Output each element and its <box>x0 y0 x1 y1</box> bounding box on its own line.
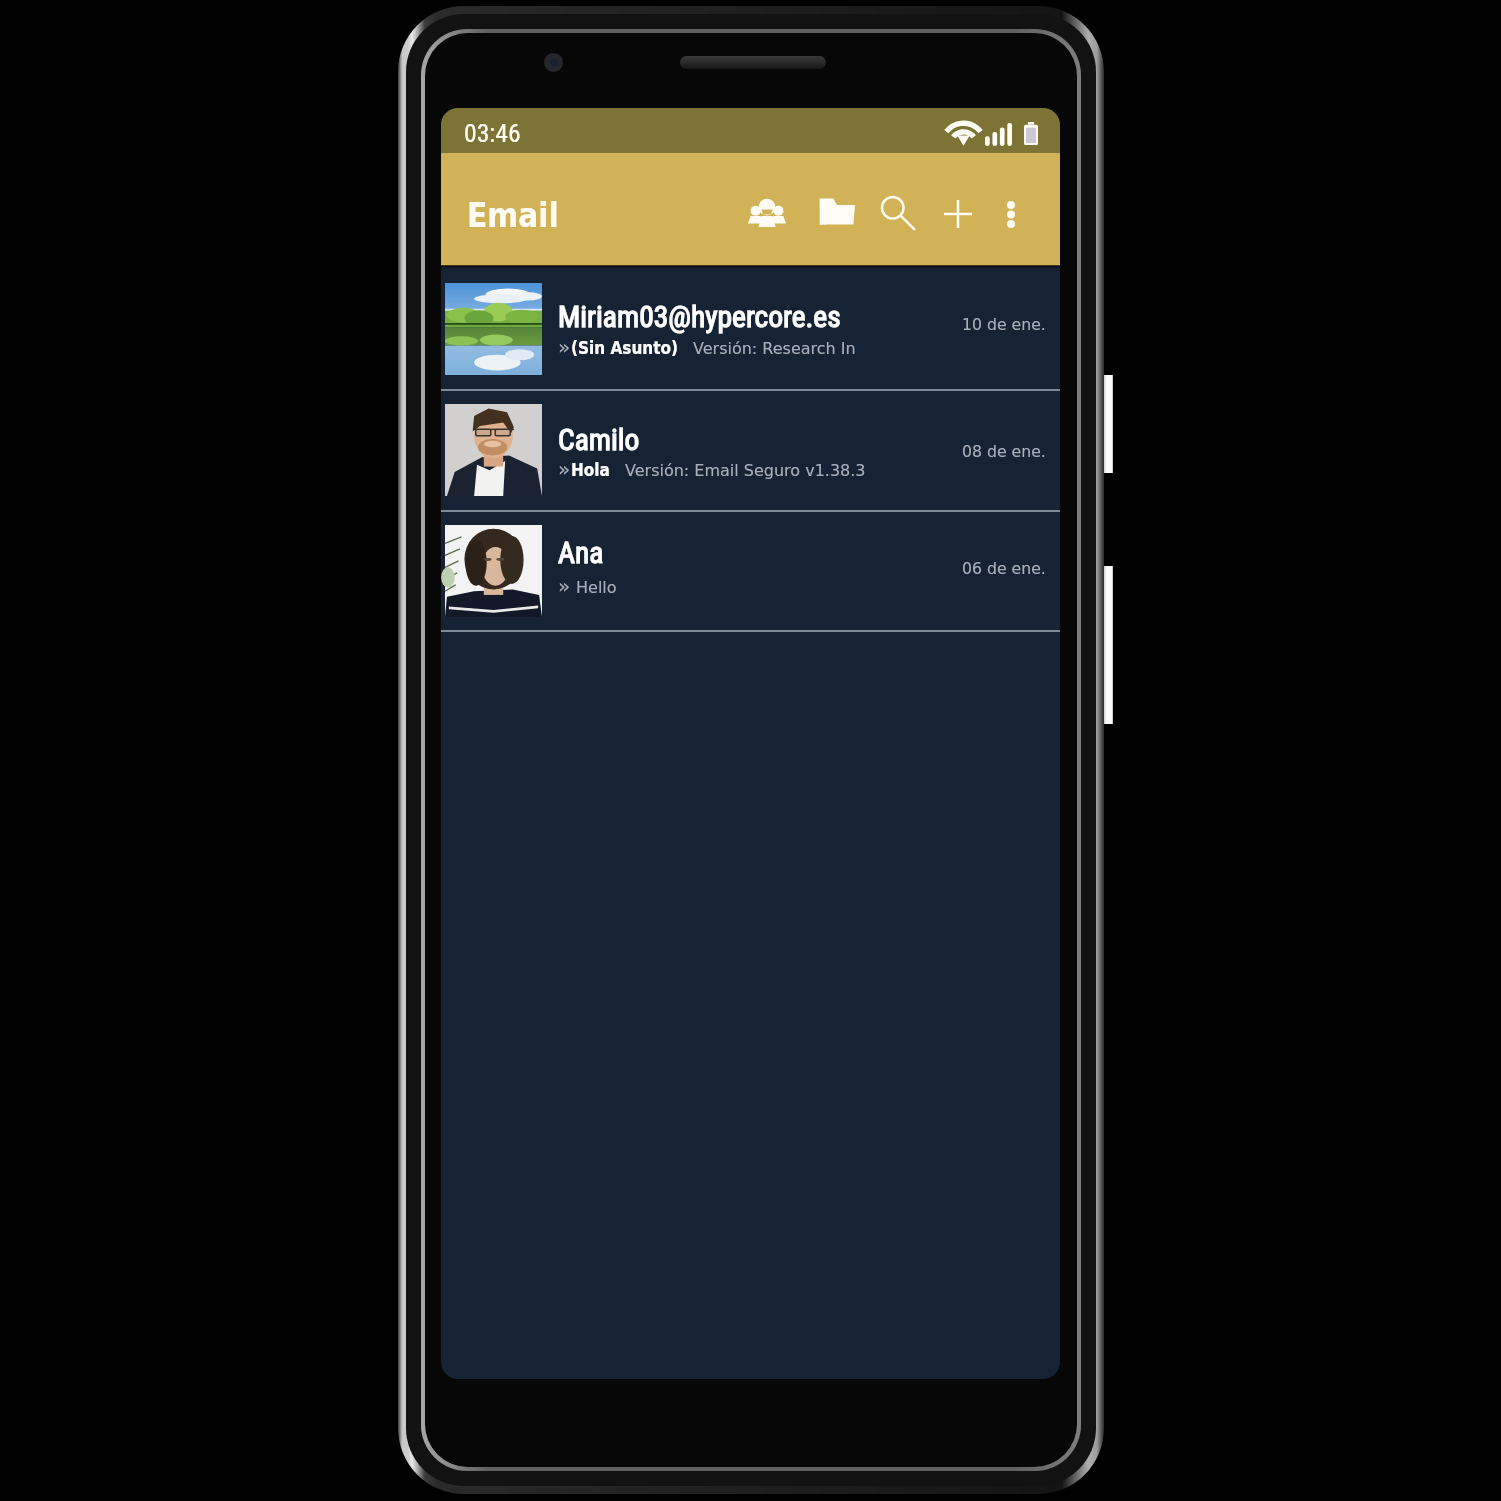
button[interactable]: Folders <box>810 184 864 238</box>
staticText: Camilo <box>558 423 640 458</box>
staticText: 03:46 <box>464 118 521 148</box>
button[interactable]: Search <box>871 186 925 240</box>
button[interactable]: Camilo <box>441 390 1060 510</box>
staticText: Ana <box>558 536 604 571</box>
staticText: 10 de ene. <box>962 315 1046 333</box>
button[interactable]: Miriam03@hypercore.es <box>441 269 1060 390</box>
button[interactable]: Contacts <box>740 185 794 239</box>
staticText: Versión: Email Seguro v1.38.3 <box>625 461 866 480</box>
staticText: » <box>558 335 571 358</box>
staticText: Miriam03@hypercore.es <box>558 300 841 335</box>
staticText: Versión: Research In <box>693 339 856 358</box>
staticText: Email <box>467 196 559 234</box>
staticText: Hola <box>571 460 610 480</box>
staticText: » <box>558 574 571 597</box>
staticText: (Sin Asunto) <box>571 338 678 358</box>
staticText: Hello <box>576 578 617 597</box>
button[interactable]: Ana <box>441 511 1060 630</box>
staticText: 06 de ene. <box>962 559 1046 577</box>
staticText: » <box>558 457 571 480</box>
staticText: 08 de ene. <box>962 442 1046 460</box>
button[interactable]: More options <box>984 187 1038 241</box>
button[interactable]: Compose <box>931 187 985 241</box>
